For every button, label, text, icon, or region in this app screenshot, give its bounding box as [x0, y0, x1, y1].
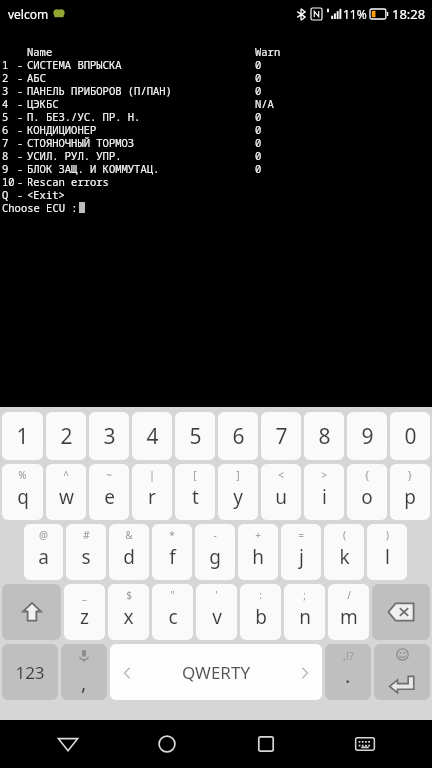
staticText: f: [169, 544, 176, 570]
button[interactable]: <: [261, 464, 301, 520]
button[interactable]: #: [66, 524, 106, 580]
staticText: s: [81, 544, 91, 570]
staticText: ): [386, 528, 389, 542]
button[interactable]: $: [108, 584, 149, 640]
staticText: -: [17, 110, 24, 123]
staticText: n: [299, 604, 311, 630]
button[interactable]: &: [109, 524, 149, 580]
staticText: Warn: [255, 45, 281, 58]
staticText: |: [149, 468, 155, 482]
staticText: Choose ECU :: [2, 201, 78, 214]
staticText: 7: [275, 422, 288, 451]
button[interactable]: _: [64, 584, 105, 640]
staticText: 6: [232, 422, 245, 451]
button[interactable]: 5: [175, 412, 215, 460]
staticText: 3: [103, 422, 116, 451]
button[interactable]: 3: [89, 412, 129, 460]
button[interactable]: ;: [284, 584, 325, 640]
button[interactable]: Enter: [374, 644, 430, 700]
staticText: 2: [2, 71, 9, 84]
staticText: +: [255, 528, 261, 542]
staticText: o: [361, 484, 373, 510]
button[interactable]: }: [390, 464, 430, 520]
button[interactable]: Shift: [2, 584, 61, 640]
button[interactable]: %: [2, 464, 43, 520]
button[interactable]: ^: [46, 464, 86, 520]
button[interactable]: ~: [89, 464, 129, 520]
staticText: 0: [255, 162, 262, 175]
staticText: 8: [2, 149, 9, 162]
button[interactable]: @: [24, 524, 63, 580]
button[interactable]: 0: [390, 412, 430, 460]
staticText: d: [123, 544, 135, 570]
staticText: q: [17, 484, 29, 510]
button[interactable]: /: [328, 584, 369, 640]
button[interactable]: Comma, voice input: [61, 644, 107, 700]
button[interactable]: Recents: [238, 720, 294, 768]
button[interactable]: ): [367, 524, 407, 580]
button[interactable]: |: [132, 464, 172, 520]
button[interactable]: 8: [304, 412, 344, 460]
staticText: v: [212, 604, 222, 630]
button[interactable]: Backspace: [372, 584, 430, 640]
staticText: -: [17, 162, 24, 175]
staticText: 9: [2, 162, 9, 175]
staticText: t: [192, 484, 199, 510]
staticText: 4: [146, 422, 159, 451]
staticText: r: [148, 484, 156, 510]
staticText: p: [404, 484, 416, 510]
button[interactable]: -: [195, 524, 235, 580]
staticText: h: [252, 544, 264, 570]
button[interactable]: >: [304, 464, 344, 520]
button[interactable]: 9: [347, 412, 387, 460]
button[interactable]: 2: [46, 412, 86, 460]
button[interactable]: ': [196, 584, 237, 640]
staticText: g: [209, 544, 221, 570]
staticText: ,: [81, 669, 87, 696]
staticText: 1: [16, 422, 29, 451]
staticText: *: [169, 528, 175, 542]
button[interactable]: *: [152, 524, 192, 580]
button[interactable]: Hide keyboard: [337, 720, 393, 768]
staticText: 10: [2, 175, 15, 188]
staticText: ЦЭКБС: [27, 97, 59, 110]
staticText: АБС: [27, 71, 46, 84]
button[interactable]: QWERTY: [110, 644, 322, 700]
button[interactable]: ,!?: [325, 644, 371, 700]
staticText: #: [83, 528, 90, 542]
button[interactable]: =: [281, 524, 321, 580]
staticText: ;: [303, 588, 306, 602]
button[interactable]: {: [347, 464, 387, 520]
staticText: ПАНЕЛЬ ПРИБОРОВ (П/ПАН): [27, 84, 172, 97]
button[interactable]: 6: [218, 412, 258, 460]
staticText: 0: [255, 149, 262, 162]
staticText: m: [340, 604, 358, 630]
staticText: j: [299, 544, 304, 570]
button[interactable]: Back: [40, 720, 96, 768]
staticText: 0: [404, 422, 417, 451]
staticText: %: [18, 468, 27, 482]
staticText: u: [275, 484, 287, 510]
button[interactable]: ": [152, 584, 193, 640]
button[interactable]: ]: [218, 464, 258, 520]
staticText: 0: [255, 58, 262, 71]
button[interactable]: +: [238, 524, 278, 580]
staticText: -: [17, 58, 24, 71]
button[interactable]: 1: [2, 412, 43, 460]
button[interactable]: :: [240, 584, 281, 640]
button[interactable]: (: [324, 524, 364, 580]
staticText: x: [123, 604, 134, 630]
button[interactable]: Home: [139, 720, 195, 768]
staticText: c: [168, 604, 178, 630]
staticText: =: [298, 528, 304, 542]
button[interactable]: 123: [2, 644, 58, 700]
staticText: ^: [63, 468, 69, 482]
staticText: k: [339, 544, 350, 570]
staticText: _: [82, 588, 87, 602]
button[interactable]: 4: [132, 412, 172, 460]
staticText: <: [278, 468, 284, 482]
staticText: 123: [15, 661, 45, 684]
button[interactable]: [: [175, 464, 215, 520]
button[interactable]: 7: [261, 412, 301, 460]
staticText: w: [59, 484, 74, 510]
